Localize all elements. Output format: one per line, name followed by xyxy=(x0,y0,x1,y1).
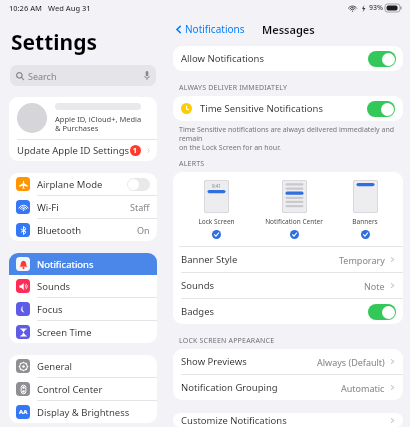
staticText: Staff xyxy=(130,201,150,213)
button[interactable]: Sounds xyxy=(9,275,157,297)
staticText: Time Sensitive Notifications xyxy=(200,102,323,115)
button[interactable]: 9:41 xyxy=(194,180,239,239)
staticText: AA xyxy=(19,408,28,416)
staticText: 10:26 AM xyxy=(9,3,42,13)
staticText: On xyxy=(137,224,150,236)
staticText: Customize Notifications xyxy=(181,414,287,427)
staticText: Show Previews xyxy=(181,355,247,368)
button[interactable]: Bluetooth xyxy=(9,219,157,241)
button[interactable]: Banner Style xyxy=(173,247,403,272)
staticText: 9:41 xyxy=(212,183,221,189)
staticText: Update Apple ID Settings xyxy=(17,144,130,157)
button[interactable]: Update Apple ID Settings xyxy=(9,140,157,161)
staticText: Notification Grouping xyxy=(181,381,278,394)
button[interactable]: Badges xyxy=(173,299,403,324)
staticText: ALERTS xyxy=(179,159,205,169)
staticText: Automatic xyxy=(341,382,385,394)
staticText: Wi-Fi xyxy=(37,201,59,214)
button[interactable]: Allow Notifications xyxy=(173,46,403,71)
button[interactable]: Control Center xyxy=(9,378,157,400)
staticText: Notification Center xyxy=(265,217,323,226)
staticText: 93% xyxy=(369,3,383,13)
button[interactable]: Notifications xyxy=(172,20,247,38)
button[interactable]: Customize Notifications xyxy=(173,413,403,427)
staticText: Badges xyxy=(181,305,215,318)
staticText: Always (Default) xyxy=(317,356,385,368)
staticText: Search xyxy=(28,70,57,82)
staticText: Notifications xyxy=(37,258,94,271)
button[interactable]: Screen Time xyxy=(9,321,157,343)
staticText: Wed Aug 31 xyxy=(48,3,91,13)
staticText: Display & Brightness xyxy=(37,406,130,419)
staticText: Messages xyxy=(262,22,315,37)
staticText: Sounds xyxy=(37,280,71,293)
button[interactable]: AA xyxy=(9,401,157,423)
staticText: Banners xyxy=(352,217,378,226)
button[interactable]: Airplane Mode xyxy=(9,173,157,195)
staticText: Apple ID, iCloud+, Media & Purchases xyxy=(55,114,142,134)
staticText: General xyxy=(37,360,73,373)
staticText: Bluetooth xyxy=(37,224,82,237)
staticText: Time Sensitive notifications are always … xyxy=(179,125,403,152)
staticText: Banner Style xyxy=(181,253,238,266)
button[interactable]: On xyxy=(367,101,395,117)
button[interactable]: General xyxy=(9,355,157,377)
button[interactable]: Notifications xyxy=(9,253,157,275)
button[interactable]: Show Previews xyxy=(173,349,403,374)
staticText: Focus xyxy=(37,303,63,316)
button[interactable]: Wi-Fi xyxy=(9,196,157,218)
button[interactable]: Search xyxy=(10,65,156,86)
staticText: LOCK SCREEN APPEARANCE xyxy=(179,336,275,346)
staticText: Notifications xyxy=(185,22,245,36)
button[interactable]: Apple ID, iCloud+, Media & Purchases xyxy=(9,97,157,139)
button[interactable]: On xyxy=(368,51,396,67)
button[interactable]: Banners xyxy=(348,180,382,239)
button[interactable]: Time Sensitive Notifications xyxy=(173,96,403,121)
button[interactable]: Sounds xyxy=(173,273,403,298)
staticText: 1 xyxy=(133,146,138,156)
staticText: Airplane Mode xyxy=(37,178,103,191)
button[interactable]: Focus xyxy=(9,298,157,320)
staticText: Lock Screen xyxy=(198,217,235,226)
button[interactable]: Toggle off xyxy=(127,178,150,191)
staticText: Note xyxy=(364,280,385,292)
staticText: Allow Notifications xyxy=(181,52,264,65)
staticText: Sounds xyxy=(181,279,215,292)
button[interactable]: Notification Grouping xyxy=(173,375,403,400)
staticText: ALWAYS DELIVER IMMEDIATELY xyxy=(179,83,288,93)
staticText: Control Center xyxy=(37,383,103,396)
staticText: Screen Time xyxy=(37,326,92,339)
button[interactable]: Notification Center xyxy=(261,180,327,239)
staticText: Settings xyxy=(11,28,98,57)
staticText: Temporary xyxy=(339,254,385,266)
button[interactable]: On xyxy=(368,304,396,320)
